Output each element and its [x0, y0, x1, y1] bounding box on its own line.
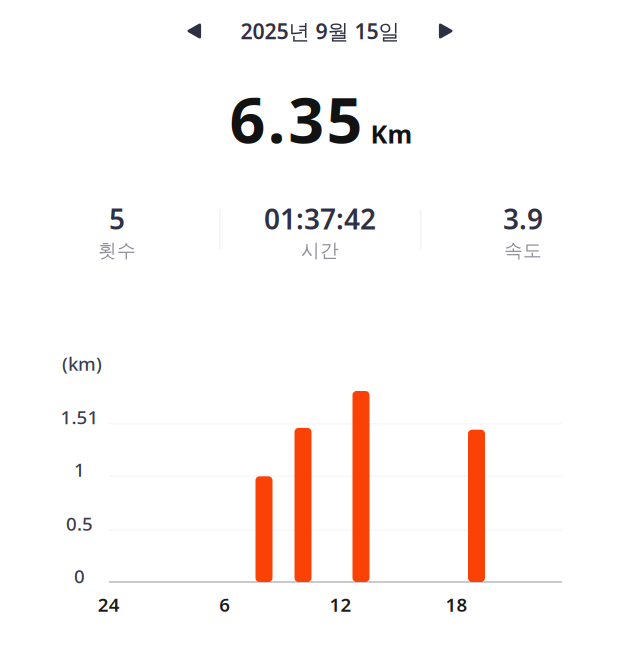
staticText: 6 [219, 592, 230, 617]
staticText: 01:37:42 [264, 200, 376, 237]
staticText: 12 [329, 592, 351, 617]
staticText: 1.51 [60, 405, 98, 429]
staticText: 속도 [504, 239, 542, 262]
staticText: 2025년 9월 15일 [240, 17, 399, 45]
staticText: 3.9 [503, 200, 543, 237]
staticText: 18 [445, 592, 467, 617]
staticText: (km) [62, 351, 102, 376]
staticText: 시간 [301, 239, 339, 262]
staticText: 횟수 [98, 239, 136, 262]
staticText: 24 [98, 592, 120, 617]
staticText: 0 [74, 564, 85, 588]
staticText: 6.35 [230, 77, 362, 161]
button[interactable]: Previous day [180, 14, 208, 48]
staticText: 1 [74, 457, 85, 482]
staticText: 5 [109, 200, 125, 237]
button[interactable]: Next day [432, 14, 460, 48]
staticText: 0.5 [66, 511, 93, 536]
staticText: Km [370, 117, 412, 151]
